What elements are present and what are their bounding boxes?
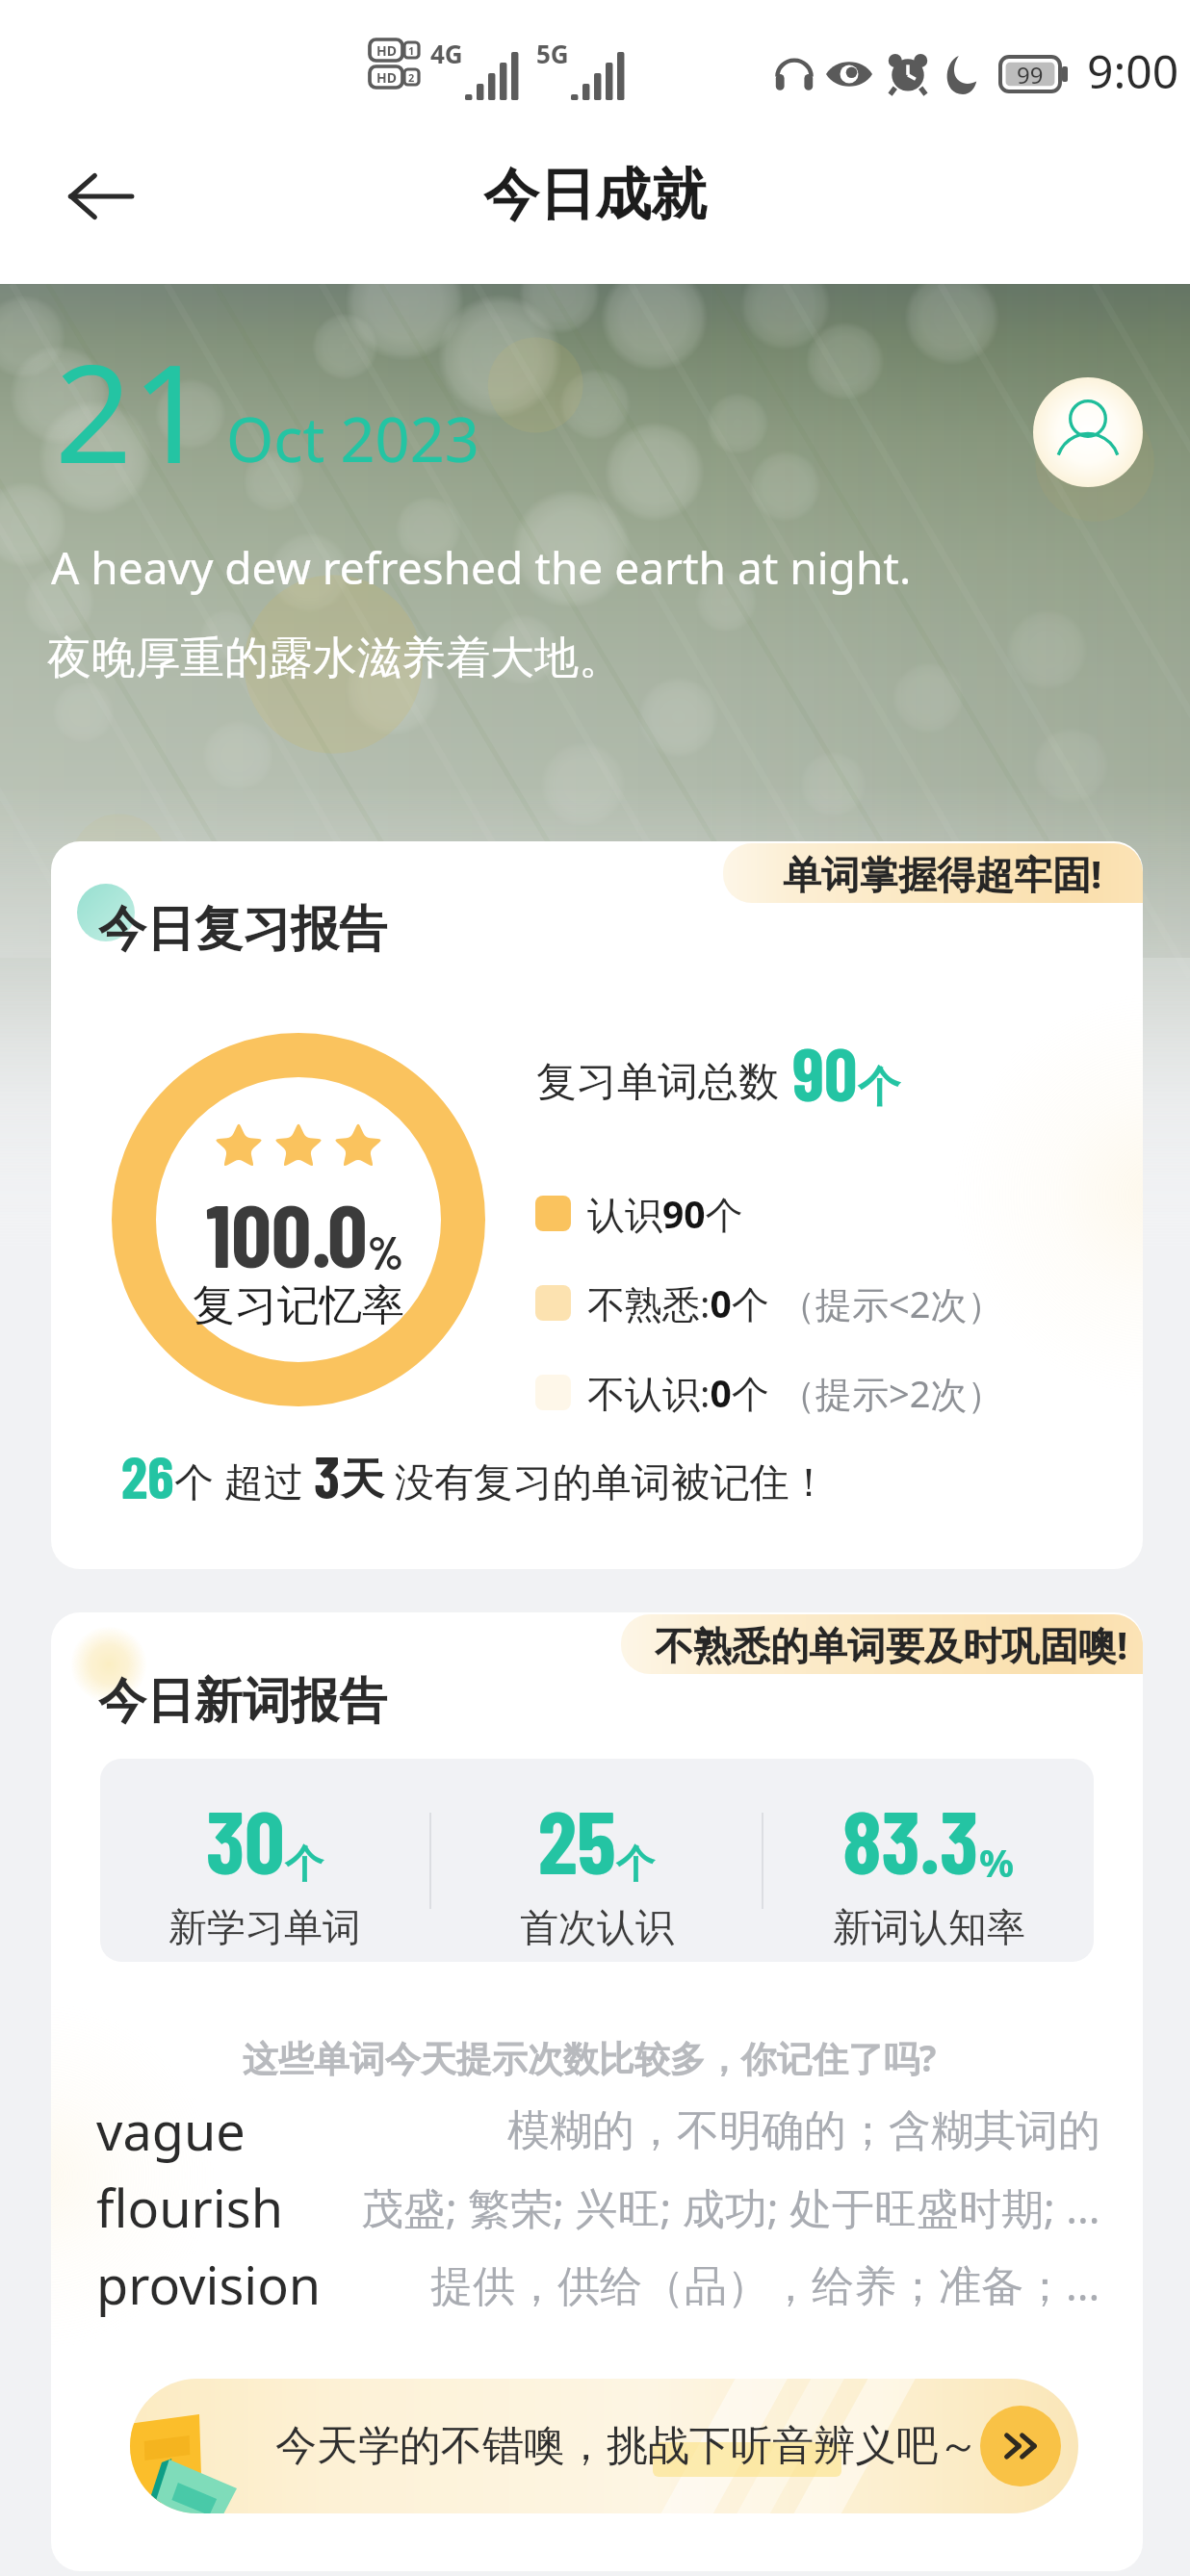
staticText: Oct 2023 — [226, 398, 479, 480]
staticText: vague — [96, 2095, 246, 2166]
staticText: 今日成就 — [483, 160, 707, 230]
staticText: 个 超过 — [174, 1454, 314, 1507]
staticText: 26 — [121, 1439, 174, 1510]
staticText: HD — [376, 41, 397, 60]
staticText: 30 — [206, 1786, 285, 1892]
staticText: 1 — [408, 43, 415, 58]
staticText: 这些单词今天提示次数比较多，你记住了吗? — [51, 2033, 1135, 2082]
staticText: （提示>2次） — [779, 1368, 1004, 1418]
staticText: 不熟悉的单词要及时巩固噢! — [655, 1618, 1128, 1671]
staticText: 认识90个 — [587, 1188, 743, 1239]
staticText: % — [368, 1224, 403, 1279]
staticText: 不认识:0个 — [587, 1367, 769, 1418]
staticText: 模糊的，不明确的；含糊其词的 — [507, 2104, 1100, 2157]
staticText: 90 — [792, 1028, 858, 1116]
staticText: 9:00 — [1087, 39, 1179, 102]
button[interactable]: Profile — [1033, 377, 1143, 487]
button[interactable]: provision — [51, 2246, 1143, 2323]
staticText: 21 — [55, 319, 210, 502]
staticText: 3 — [314, 1439, 341, 1510]
staticText: 夜晚厚重的露水滋养着大地。 — [47, 631, 623, 686]
staticText: 复习单词总数 — [536, 1057, 779, 1108]
staticText: 4G — [430, 37, 463, 70]
staticText: % — [979, 1836, 1015, 1888]
staticText: 83.3 — [842, 1786, 979, 1892]
staticText: 个 — [285, 1840, 323, 1888]
button[interactable]: 今天学的不错噢，挑战下听音辨义吧～ — [130, 2379, 1078, 2513]
staticText: 今天学的不错噢，挑战下听音辨义吧～ — [275, 2420, 979, 2472]
staticText: （提示<2次） — [779, 1278, 1004, 1328]
staticText: 个 — [858, 1061, 900, 1114]
button[interactable]: vague — [51, 2092, 1143, 2169]
staticText: 不熟悉:0个 — [587, 1277, 769, 1328]
staticText: 茂盛; 繁荣; 兴旺; 成功; 处于旺盛时期; ... — [361, 2178, 1100, 2236]
staticText: 25 — [538, 1786, 616, 1892]
staticText: 新词认知率 — [833, 1903, 1025, 1951]
button[interactable]: Back — [33, 129, 168, 264]
staticText: 今日复习报告 — [98, 899, 387, 960]
staticText: 复习记忆率 — [193, 1279, 404, 1332]
button[interactable]: flourish — [51, 2169, 1143, 2246]
staticText: 没有复习的单词被记住！ — [384, 1454, 829, 1507]
staticText: 100.0 — [206, 1179, 368, 1285]
staticText: 99 — [1017, 59, 1044, 90]
staticText: 提供，供给（品），给养；准备；... — [430, 2255, 1100, 2313]
staticText: 个 — [616, 1840, 655, 1888]
staticText: 天 — [341, 1453, 384, 1507]
staticText: A heavy dew refreshed the earth at night… — [51, 537, 912, 598]
staticText: HD — [376, 68, 397, 87]
staticText: provision — [96, 2249, 322, 2320]
staticText: 单词掌握得超牢固! — [783, 847, 1102, 900]
staticText: 5G — [536, 37, 569, 70]
staticText: 今日新词报告 — [98, 1671, 387, 1732]
staticText: 首次认识 — [520, 1903, 674, 1951]
staticText: flourish — [96, 2172, 284, 2243]
staticText: 2 — [408, 70, 415, 85]
staticText: 新学习单词 — [168, 1903, 361, 1951]
button[interactable]: Start challenge — [980, 2406, 1061, 2486]
